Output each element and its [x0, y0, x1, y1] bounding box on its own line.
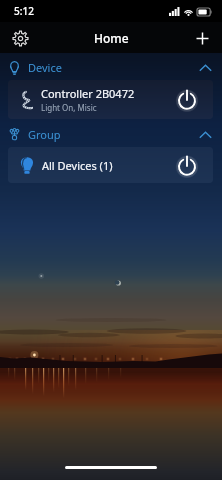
button[interactable]: Power toggle	[170, 83, 203, 116]
staticText: Light On, Misic	[41, 102, 97, 113]
button[interactable]: Add	[188, 24, 216, 52]
staticText: Group	[28, 127, 61, 142]
button[interactable]: Power toggle all devices	[170, 149, 203, 182]
staticText: Home	[94, 30, 129, 46]
staticText: Device	[28, 60, 62, 75]
staticText: Controller 2B0472	[41, 86, 135, 101]
button[interactable]: Settings	[6, 24, 34, 52]
staticText: All Devices (1)	[42, 158, 113, 173]
staticText: 5:12	[14, 4, 34, 18]
button[interactable]: Group	[0, 122, 222, 147]
button[interactable]: Controller 2B0472	[8, 80, 213, 119]
button[interactable]: All Devices (1)	[8, 147, 213, 183]
button[interactable]: Device	[0, 55, 222, 80]
